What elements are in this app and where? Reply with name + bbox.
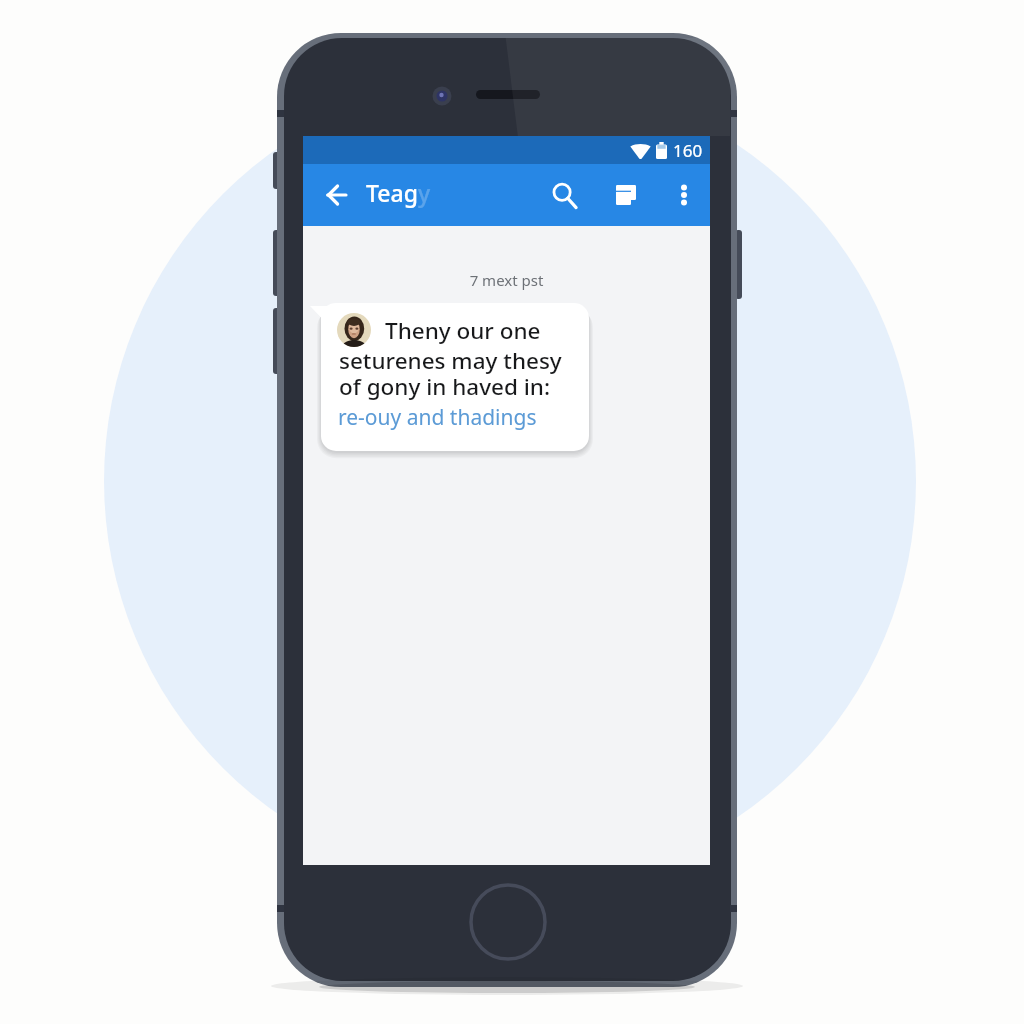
staticText: Theny our one [385,315,541,346]
staticText: 7 mext pst [303,270,710,290]
button[interactable]: Back [320,179,352,211]
button[interactable]: Tabs [603,172,649,218]
button[interactable]: Search [541,172,587,218]
staticText: seturenes may thesy [339,345,562,376]
staticText: y [418,177,431,208]
staticText: Teag [366,177,418,208]
button[interactable]: More options [662,173,706,217]
staticText: 160 [673,139,703,162]
staticText: of gony in haved in: [339,371,551,402]
button[interactable]: Theny our one [321,303,589,451]
button[interactable]: Teag [366,177,431,208]
staticText: re-ouy and thadings [338,403,537,432]
